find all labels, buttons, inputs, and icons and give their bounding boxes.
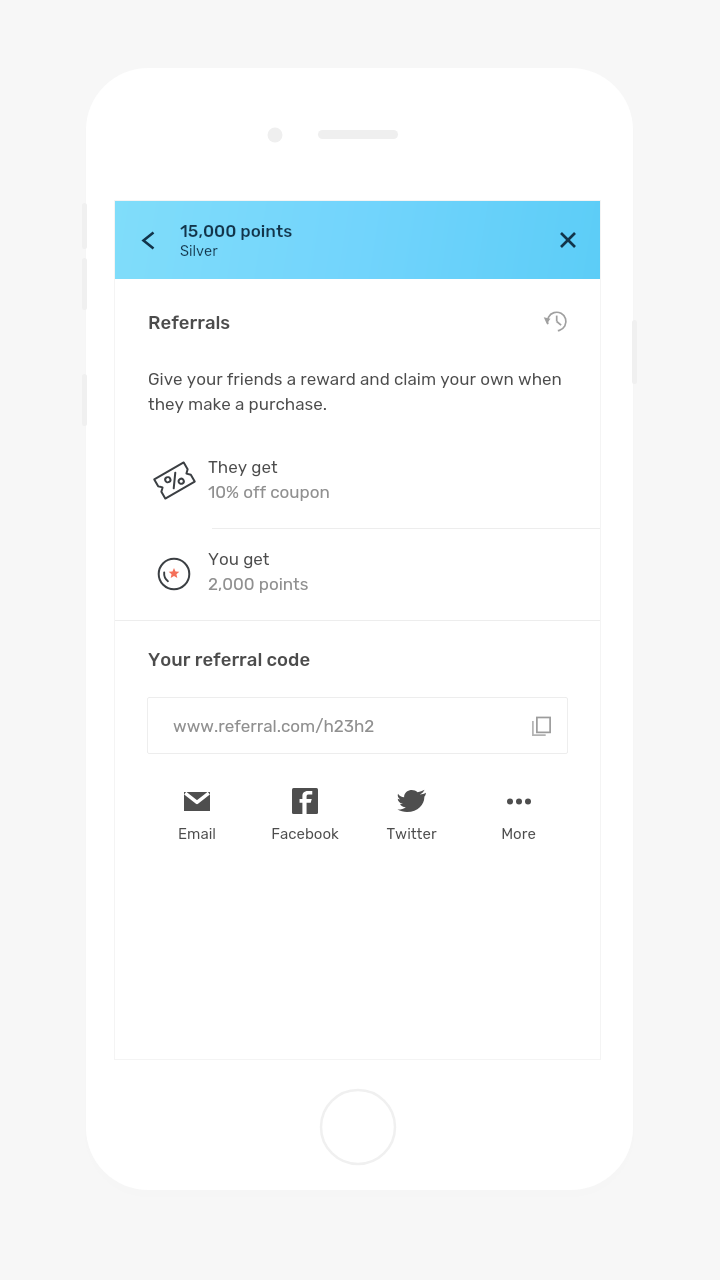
staticText: 2,000 points: [208, 574, 309, 594]
staticText: Give your friends a reward and claim you…: [148, 369, 570, 414]
staticText: Your referral code: [148, 649, 311, 671]
button[interactable]: Rewards history: [539, 305, 571, 337]
button[interactable]: They get: [115, 435, 600, 528]
staticText: 10% off coupon: [208, 482, 330, 502]
staticText: They get: [208, 457, 278, 477]
button[interactable]: More: [465, 784, 572, 843]
staticText: You get: [208, 549, 270, 569]
staticText: Facebook: [271, 825, 339, 843]
staticText: Twitter: [386, 825, 437, 843]
button[interactable]: Facebook: [251, 784, 358, 843]
button[interactable]: Email: [143, 784, 251, 843]
staticText: Silver: [180, 242, 218, 259]
button[interactable]: Close: [546, 218, 590, 262]
button[interactable]: Back: [126, 218, 170, 262]
staticText: www.referral.com/h23h2: [173, 716, 375, 736]
staticText: Referrals: [148, 312, 231, 334]
button[interactable]: Twitter: [358, 784, 465, 843]
button[interactable]: You get: [115, 529, 600, 620]
staticText: More: [501, 825, 536, 843]
button[interactable]: www.referral.com/h23h2: [147, 697, 568, 754]
staticText: 15,000 points: [180, 221, 293, 241]
staticText: Email: [178, 825, 216, 843]
